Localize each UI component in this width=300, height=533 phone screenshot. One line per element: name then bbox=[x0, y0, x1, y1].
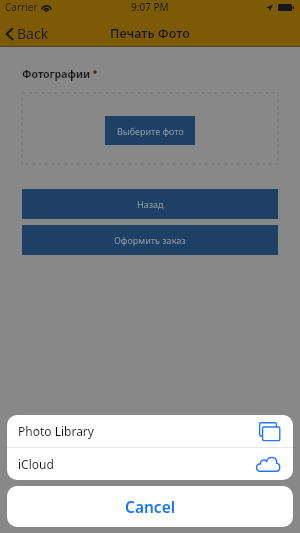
staticText: Back bbox=[17, 24, 49, 43]
button[interactable]: iCloud bbox=[7, 448, 293, 480]
staticText: 9:07 PM bbox=[131, 0, 169, 14]
staticText: iCloud bbox=[18, 456, 54, 472]
button[interactable]: Back bbox=[0, 21, 59, 46]
button[interactable]: Назад bbox=[22, 189, 278, 219]
staticText: Оформить заказ bbox=[114, 234, 186, 246]
staticText: Печать Фото bbox=[110, 25, 190, 42]
button[interactable]: Cancel bbox=[7, 486, 293, 527]
button[interactable]: Оформить заказ bbox=[22, 225, 278, 255]
staticText: Carrier bbox=[5, 0, 38, 14]
other: Photo Library bbox=[259, 422, 280, 441]
button[interactable]: Выберите фото bbox=[105, 116, 195, 145]
button[interactable]: Photo Library bbox=[7, 415, 293, 447]
staticText: Назад bbox=[137, 198, 164, 210]
staticText: Выберите фото bbox=[117, 125, 184, 137]
staticText: Фотографии bbox=[22, 67, 91, 81]
staticText: Photo Library bbox=[18, 423, 94, 439]
other: iCloud bbox=[256, 455, 280, 473]
staticText: Cancel bbox=[125, 496, 176, 517]
